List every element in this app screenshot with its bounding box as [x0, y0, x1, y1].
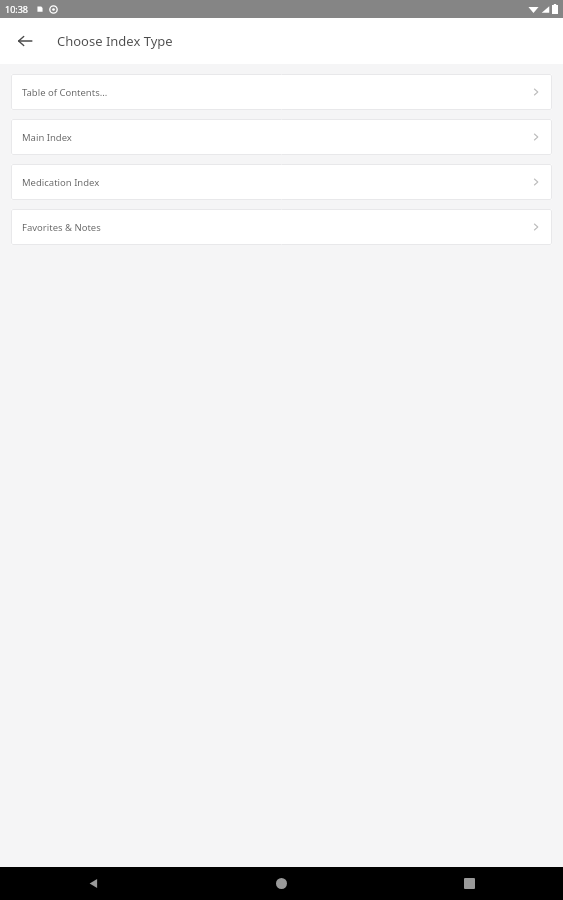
button[interactable]: Favorites & Notes [11, 209, 552, 245]
button[interactable]: Recent apps [375, 867, 563, 900]
staticText: Main Index [22, 131, 72, 144]
staticText: Choose Index Type [57, 32, 173, 50]
staticText: Favorites & Notes [22, 221, 101, 234]
button[interactable]: Back [0, 867, 187, 900]
button[interactable]: Medication Index [11, 164, 552, 200]
button[interactable]: Main Index [11, 119, 552, 155]
staticText: Table of Contents... [22, 86, 108, 99]
button[interactable]: Back [11, 27, 39, 55]
staticText: 10:38 [5, 3, 29, 15]
staticText: Medication Index [22, 176, 100, 189]
button[interactable]: Table of Contents... [11, 74, 552, 110]
button[interactable]: Home [187, 867, 375, 900]
